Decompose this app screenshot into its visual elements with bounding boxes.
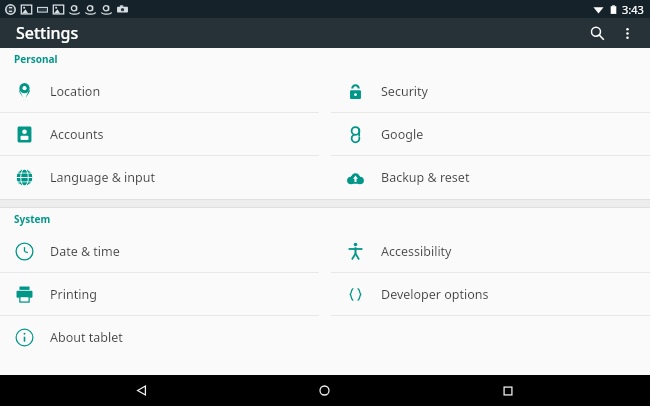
staticText: Accessibility [381, 243, 452, 260]
staticText: Language & input [50, 169, 155, 186]
button[interactable]: Location [0, 70, 319, 113]
staticText: Security [381, 83, 428, 100]
button[interactable]: Language & input [0, 156, 319, 199]
button[interactable]: Accounts [0, 113, 319, 156]
staticText: Accounts [50, 126, 104, 143]
staticText: Backup & reset [381, 169, 470, 186]
staticText: Google [381, 126, 424, 143]
button[interactable]: Security [331, 70, 650, 113]
button[interactable]: Search [582, 18, 612, 48]
staticText: 3:43 [622, 2, 644, 17]
staticText: Location [50, 83, 101, 100]
button[interactable]: About tablet [0, 316, 319, 359]
staticText: Personal [14, 52, 58, 66]
staticText: Developer options [381, 286, 489, 303]
button[interactable]: Home [274, 375, 375, 406]
staticText: About tablet [50, 329, 123, 346]
button[interactable]: Date & time [0, 230, 319, 273]
button[interactable]: Printing [0, 273, 319, 316]
staticText: System [14, 212, 51, 226]
staticText: Date & time [50, 243, 120, 260]
button[interactable]: Google [331, 113, 650, 156]
staticText: Printing [50, 286, 97, 303]
button[interactable]: Backup & reset [331, 156, 650, 199]
staticText: Settings [16, 22, 79, 44]
button[interactable]: Accessibility [331, 230, 650, 273]
button[interactable]: Back [91, 375, 192, 406]
button[interactable]: Recent apps [457, 375, 558, 406]
button[interactable]: Developer options [331, 273, 650, 316]
button[interactable]: More options [612, 18, 642, 48]
